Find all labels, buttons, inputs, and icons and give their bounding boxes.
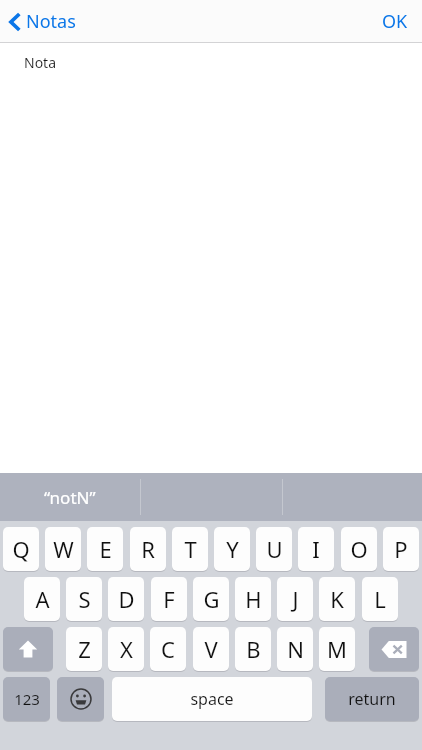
button[interactable]: J — [277, 577, 313, 621]
button[interactable]: T — [172, 527, 208, 571]
button[interactable]: P — [383, 527, 419, 571]
button[interactable]: Q — [3, 527, 39, 571]
button[interactable]: Z — [66, 627, 102, 671]
button[interactable]: E — [87, 527, 123, 571]
button[interactable]: Y — [214, 527, 250, 571]
button[interactable]: 123 — [3, 677, 50, 721]
button[interactable]: C — [150, 627, 186, 671]
button[interactable]: M — [319, 627, 355, 671]
button[interactable]: Emoji — [57, 677, 104, 721]
staticText: H — [245, 584, 262, 614]
button[interactable]: space — [112, 677, 312, 721]
button[interactable]: V — [193, 627, 229, 671]
staticText: Y — [226, 534, 239, 564]
staticText: D — [118, 584, 135, 614]
button[interactable]: return — [325, 677, 419, 721]
staticText: V — [204, 634, 218, 664]
staticText: T — [184, 534, 197, 564]
staticText: G — [203, 584, 220, 614]
staticText: Nota — [24, 53, 57, 72]
staticText: Q — [12, 534, 30, 564]
button[interactable]: S — [66, 577, 102, 621]
staticText: X — [120, 634, 133, 664]
button[interactable]: K — [319, 577, 355, 621]
button[interactable]: R — [130, 527, 166, 571]
button[interactable]: N — [277, 627, 313, 671]
button[interactable]: G — [193, 577, 229, 621]
button[interactable]: OK — [376, 3, 414, 40]
staticText: M — [327, 634, 347, 664]
staticText: O — [350, 534, 368, 564]
staticText: L — [374, 584, 386, 614]
staticText: 123 — [14, 689, 40, 709]
staticText: B — [246, 634, 261, 664]
staticText: R — [141, 534, 155, 564]
staticText: J — [292, 584, 299, 614]
button[interactable]: H — [235, 577, 271, 621]
button[interactable]: A — [24, 577, 60, 621]
button[interactable]: B — [235, 627, 271, 671]
button[interactable]: O — [341, 527, 377, 571]
button[interactable]: “notN” — [0, 473, 140, 521]
button[interactable]: X — [108, 627, 144, 671]
staticText: E — [99, 534, 112, 564]
button[interactable]: Backspace — [369, 627, 419, 671]
staticText: S — [78, 584, 91, 614]
staticText: N — [287, 634, 304, 664]
button[interactable]: L — [362, 577, 398, 621]
button[interactable]: D — [108, 577, 144, 621]
staticText: Z — [78, 634, 91, 664]
staticText: W — [53, 534, 74, 564]
staticText: “notN” — [44, 486, 96, 509]
button[interactable]: Notas — [9, 9, 76, 34]
button[interactable]: W — [45, 527, 81, 571]
staticText: OK — [382, 9, 408, 34]
staticText: F — [163, 584, 175, 614]
staticText: A — [35, 584, 50, 614]
staticText: return — [348, 688, 396, 710]
button[interactable]: F — [151, 577, 187, 621]
button[interactable]: I — [298, 527, 334, 571]
button[interactable]: Shift — [3, 627, 53, 671]
button[interactable]: U — [256, 527, 292, 571]
staticText: space — [190, 688, 234, 710]
staticText: Notas — [26, 9, 76, 34]
staticText: K — [330, 584, 344, 614]
staticText: P — [394, 534, 408, 564]
staticText: C — [161, 634, 175, 664]
staticText: U — [266, 534, 283, 564]
staticText: I — [312, 534, 320, 564]
